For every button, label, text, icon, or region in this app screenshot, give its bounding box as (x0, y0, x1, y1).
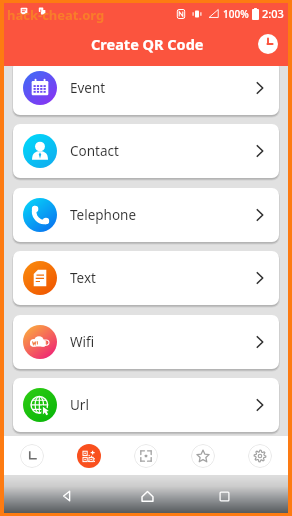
button[interactable]: Back (45, 477, 89, 515)
button[interactable]: Create QR code (60, 436, 117, 475)
staticText: Url (70, 396, 89, 414)
staticText: Event (70, 79, 106, 97)
button[interactable]: Contact (13, 124, 279, 178)
staticText: Contact (70, 142, 119, 160)
button[interactable]: Favourites (174, 436, 231, 475)
staticText: Text (70, 269, 96, 287)
staticText: 2:03 (262, 6, 284, 21)
button[interactable]: Settings (231, 436, 288, 475)
button[interactable]: History (252, 28, 284, 60)
button[interactable]: Scan code (117, 436, 174, 475)
button[interactable]: Recent apps (202, 477, 246, 515)
button[interactable]: Wifi (13, 315, 279, 369)
button[interactable]: Text (13, 251, 279, 305)
button[interactable]: Event (13, 66, 279, 115)
button[interactable]: Url (13, 378, 279, 432)
staticText: hack-cheat.org (7, 6, 105, 24)
staticText: Wifi (70, 333, 95, 351)
button[interactable]: Telephone (13, 188, 279, 242)
button[interactable]: Home (125, 477, 169, 515)
staticText: 100% (223, 7, 249, 21)
staticText: Telephone (70, 206, 137, 224)
button[interactable]: History (4, 436, 60, 475)
staticText: Create QR Code (91, 34, 204, 54)
